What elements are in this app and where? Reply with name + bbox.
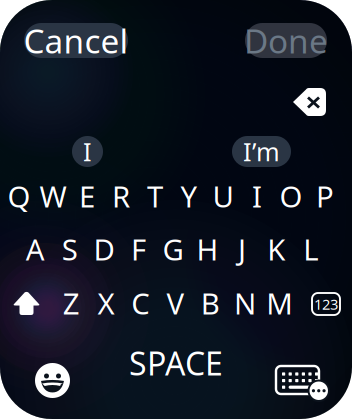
staticText: I (83, 135, 92, 168)
staticText: SPACE (129, 342, 223, 384)
button[interactable]: Y (172, 175, 206, 217)
button[interactable]: I (72, 136, 103, 167)
staticText: V (166, 283, 184, 322)
staticText: T (147, 176, 163, 215)
button[interactable]: P (308, 175, 342, 217)
button[interactable]: Cancel (24, 23, 128, 58)
button[interactable]: C (123, 282, 158, 324)
staticText: P (316, 176, 334, 215)
staticText: O (279, 176, 302, 215)
staticText: I (252, 176, 262, 215)
button[interactable]: SPACE (121, 346, 231, 380)
button[interactable]: Q (2, 175, 36, 217)
staticText: C (131, 283, 150, 322)
staticText: Y (180, 176, 197, 215)
button[interactable]: R (104, 175, 138, 217)
button[interactable]: A (18, 228, 52, 270)
staticText: L (303, 229, 318, 268)
staticText: N (234, 283, 256, 322)
button[interactable]: T (138, 175, 172, 217)
staticText: G (162, 229, 183, 268)
staticText: Cancel (23, 18, 128, 63)
staticText: B (201, 283, 220, 322)
button[interactable]: F (121, 228, 156, 270)
staticText: J (238, 229, 246, 268)
button[interactable]: K (259, 228, 293, 270)
button[interactable]: L (294, 228, 328, 270)
button[interactable]: V (158, 282, 193, 324)
staticText: I’m (243, 135, 280, 168)
button[interactable]: I’m (232, 136, 291, 167)
staticText: Q (7, 176, 30, 215)
button[interactable]: B (193, 282, 228, 324)
button[interactable]: Shift (13, 292, 40, 315)
button[interactable]: N (228, 282, 262, 324)
staticText: S (62, 229, 78, 268)
staticText: Z (63, 283, 80, 322)
button[interactable]: M (262, 282, 297, 324)
staticText: 123 (314, 294, 338, 314)
button[interactable]: D (87, 228, 121, 270)
button[interactable]: Emoji (35, 363, 70, 398)
button[interactable]: G (156, 228, 190, 270)
staticText: X (98, 283, 115, 322)
button[interactable]: S (52, 228, 87, 270)
button[interactable]: E (70, 175, 104, 217)
staticText: K (267, 229, 285, 268)
button[interactable]: X (89, 282, 123, 324)
button[interactable]: Numbers and symbols (312, 293, 340, 315)
staticText: R (112, 176, 130, 215)
button[interactable]: Delete (293, 88, 326, 116)
staticText: H (196, 229, 218, 268)
button[interactable]: H (190, 228, 225, 270)
button[interactable]: Z (54, 282, 89, 324)
button[interactable]: Done (245, 23, 327, 58)
staticText: D (94, 229, 115, 268)
button[interactable]: I (240, 175, 274, 217)
staticText: W (39, 176, 66, 215)
button[interactable]: J (225, 228, 259, 270)
button[interactable]: Dictation (276, 366, 330, 402)
staticText: A (26, 229, 45, 268)
staticText: Done (244, 18, 328, 63)
button[interactable]: U (206, 175, 240, 217)
staticText: U (212, 176, 233, 215)
staticText: M (266, 283, 293, 322)
button[interactable]: W (36, 175, 70, 217)
staticText: F (131, 229, 146, 268)
button[interactable]: O (274, 175, 308, 217)
staticText: E (79, 176, 95, 215)
